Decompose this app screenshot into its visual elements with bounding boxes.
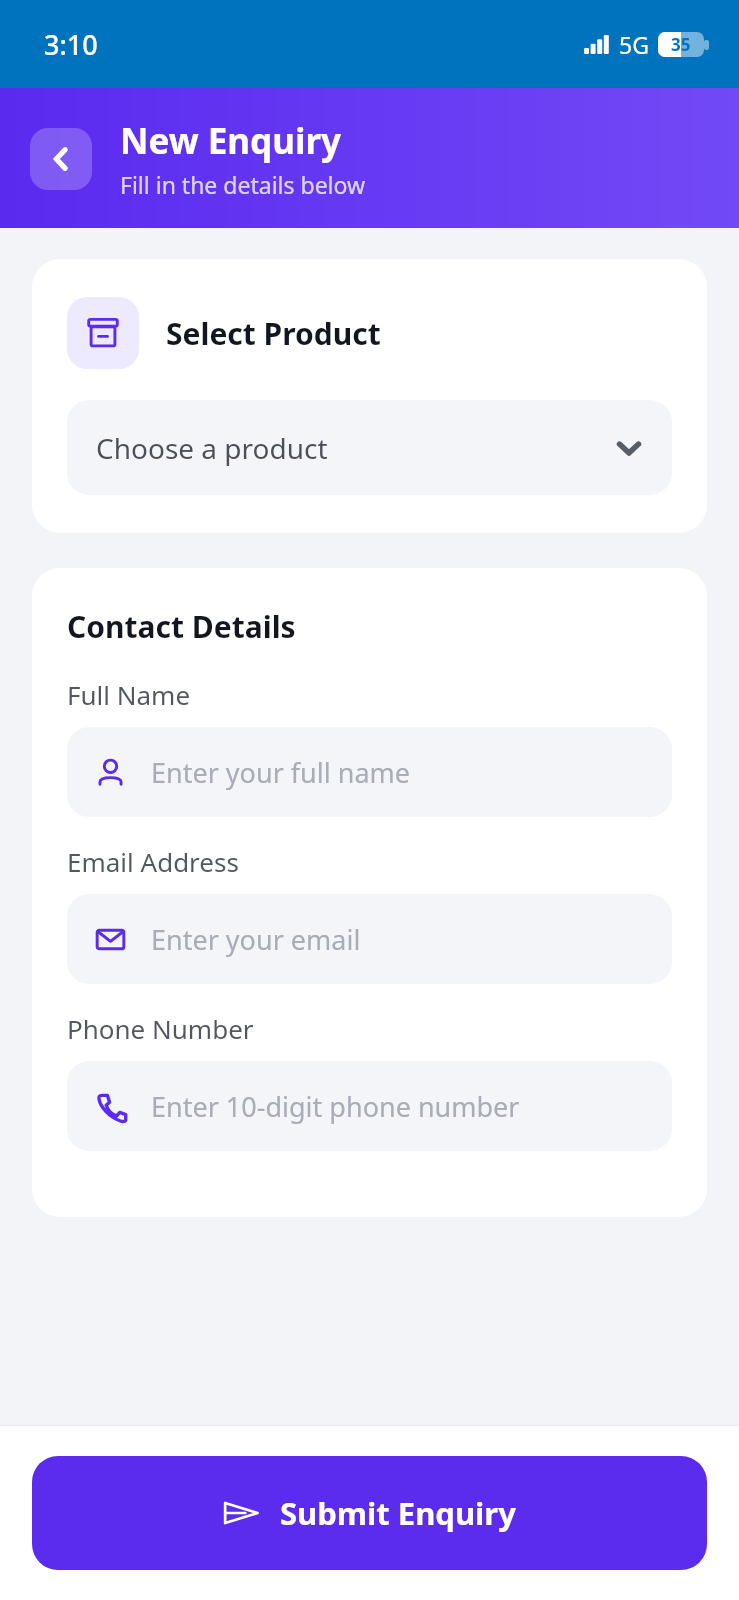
staticText: Contact Details — [67, 606, 296, 647]
staticText: Full Name — [67, 677, 191, 712]
staticText: 3:10 — [44, 26, 98, 63]
staticText: Enter your full name — [151, 754, 411, 791]
button[interactable]: Choose a product — [67, 400, 672, 495]
staticText: 5G — [619, 29, 649, 60]
button[interactable]: Enter your full name — [67, 727, 672, 817]
button[interactable]: Enter 10-digit phone number — [67, 1061, 672, 1151]
staticText: Enter 10-digit phone number — [151, 1088, 520, 1125]
staticText: Fill in the details below — [120, 169, 366, 200]
staticText: Choose a product — [96, 429, 615, 467]
button[interactable]: Submit Enquiry — [32, 1456, 707, 1570]
button[interactable]: Enter your email — [67, 894, 672, 984]
button[interactable]: Back — [30, 128, 92, 190]
staticText: 35 — [671, 33, 691, 56]
staticText: Select Product — [166, 313, 381, 354]
staticText: New Enquiry — [120, 117, 342, 165]
staticText: Phone Number — [67, 1011, 254, 1046]
staticText: Email Address — [67, 844, 239, 879]
staticText: Enter your email — [151, 921, 361, 958]
staticText: Submit Enquiry — [280, 1492, 516, 1534]
